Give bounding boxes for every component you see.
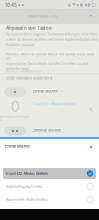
button[interactable]: Durch EQ-Modus blättern bbox=[3, 168, 96, 179]
staticText: 0 bbox=[10, 97, 19, 115]
staticText: Multigeschwindigkeit bbox=[0, 115, 30, 122]
staticText: ✎ bbox=[88, 107, 93, 113]
staticText: ▲ bbox=[68, 3, 71, 7]
staticText: ✓ bbox=[88, 171, 92, 176]
staticText: Funktion zuweist. bbox=[6, 43, 35, 47]
staticText: Hinweis: Wenn du gerade Musik mit Spotif… bbox=[6, 52, 94, 60]
staticText: BEIDE OHRHÖRER VERWENDEN bbox=[6, 77, 52, 80]
button[interactable]: Schließen bbox=[0, 137, 94, 150]
button[interactable]: Räumliches Audio Ein/Aus bbox=[3, 194, 96, 205]
staticText: Anpassen von Tasten bbox=[6, 25, 52, 31]
staticText: anpassbarer Tastendruck auf alle Favorit… bbox=[6, 62, 88, 65]
staticText: Kopfverfolgung Ein/Aus bbox=[6, 184, 43, 189]
staticText: support.apple.com bbox=[27, 14, 57, 18]
staticText: ⌃ bbox=[89, 14, 93, 20]
button[interactable]: Bearbeiten bbox=[0, 24, 94, 113]
staticText: Einmal drücken bbox=[5, 144, 30, 148]
staticText: Du kannst deine eigenen Tasteneinstellun… bbox=[6, 32, 98, 36]
button[interactable]: Kopfverfolgung Ein/Aus bbox=[3, 181, 96, 192]
staticText: 40 bbox=[84, 3, 90, 7]
staticText: Zweimal drücken bbox=[33, 128, 61, 132]
staticText: Räumliches Audio Ein/Aus bbox=[6, 197, 48, 202]
button[interactable]: Ausblenden bbox=[0, 9, 94, 20]
staticText: ▼ bbox=[72, 3, 75, 7]
staticText: Weitere Informationen bbox=[6, 69, 41, 73]
staticText: 10:45 bbox=[5, 2, 17, 8]
staticText: indem du deinen rechten und linken Kopfh… bbox=[6, 38, 98, 42]
staticText: Durch EQ-Modus blättern bbox=[33, 102, 75, 106]
staticText: einfache neue. bbox=[6, 67, 30, 71]
staticText: Einmal drücken bbox=[33, 89, 58, 93]
staticText: ✕ bbox=[89, 144, 93, 150]
staticText: ıll bbox=[80, 3, 83, 7]
staticText: Durch EQ-Modus blättern bbox=[6, 171, 48, 176]
